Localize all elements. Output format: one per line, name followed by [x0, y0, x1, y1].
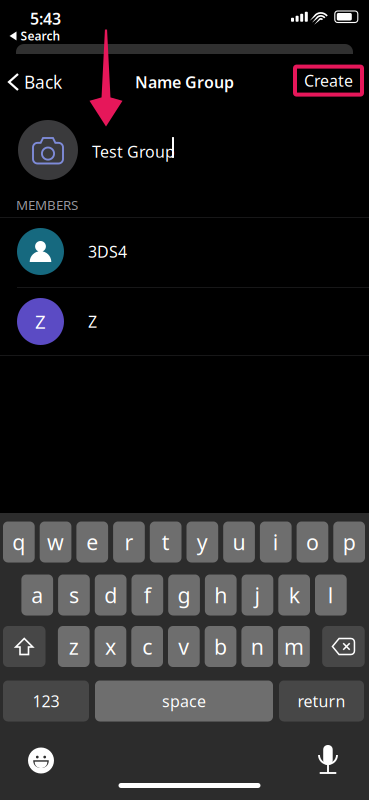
button[interactable]: h — [205, 574, 237, 615]
staticText: Search — [20, 28, 60, 44]
staticText: Create — [304, 70, 353, 91]
button[interactable]: m — [278, 626, 310, 667]
staticText: w — [47, 528, 64, 556]
button[interactable]: f — [131, 574, 163, 615]
button[interactable]: Dictation — [314, 745, 342, 774]
button[interactable]: z — [58, 626, 90, 667]
staticText: m — [284, 632, 304, 661]
staticText: MEMBERS — [16, 196, 78, 214]
staticText: Back — [24, 70, 62, 93]
staticText: t — [162, 528, 170, 556]
staticText: a — [31, 581, 43, 609]
staticText: z — [69, 632, 79, 661]
button[interactable]: p — [333, 521, 365, 562]
button[interactable]: Add group photo — [18, 120, 78, 180]
staticText: i — [273, 528, 279, 556]
staticText: Z — [88, 311, 97, 332]
staticText: x — [105, 632, 116, 661]
button[interactable]: u — [223, 521, 255, 562]
button[interactable]: 123 — [3, 680, 89, 721]
staticText: o — [306, 528, 319, 556]
staticText: e — [86, 528, 98, 556]
button[interactable]: x — [95, 626, 126, 667]
button[interactable]: b — [205, 626, 236, 667]
button[interactable]: c — [131, 626, 163, 667]
button[interactable]: t — [150, 521, 181, 562]
button[interactable]: n — [241, 626, 273, 667]
staticText: q — [12, 528, 25, 556]
staticText: f — [144, 581, 151, 609]
button[interactable]: Create — [295, 67, 362, 95]
button[interactable]: y — [186, 521, 218, 562]
button[interactable]: a — [21, 574, 53, 615]
button[interactable]: s — [58, 574, 90, 615]
staticText: y — [197, 528, 208, 556]
staticText: Z — [35, 309, 46, 334]
staticText: k — [289, 581, 300, 609]
staticText: 3DS4 — [88, 241, 127, 262]
staticText: b — [214, 632, 227, 661]
staticText: l — [328, 581, 334, 609]
staticText: h — [214, 581, 227, 609]
staticText: Test Group — [92, 141, 175, 162]
button[interactable]: w — [40, 521, 71, 562]
button[interactable]: Back — [0, 60, 62, 104]
button[interactable]: v — [168, 626, 200, 667]
button[interactable]: Delete — [322, 626, 365, 667]
staticText: return — [297, 690, 345, 712]
button[interactable]: j — [242, 574, 273, 615]
staticText: s — [69, 581, 79, 609]
staticText: c — [142, 632, 152, 661]
staticText: Name Group — [135, 71, 234, 93]
button[interactable]: d — [95, 574, 126, 615]
staticText: p — [343, 528, 356, 556]
staticText: 123 — [32, 690, 59, 712]
staticText: v — [178, 632, 189, 661]
button[interactable]: g — [168, 574, 200, 615]
button[interactable]: i — [260, 521, 292, 562]
staticText: u — [232, 528, 245, 556]
button[interactable]: q — [3, 521, 35, 562]
button[interactable]: e — [76, 521, 108, 562]
staticText: g — [178, 581, 191, 609]
staticText: j — [254, 581, 260, 609]
button[interactable]: 3DS4 — [0, 217, 369, 286]
button[interactable]: return — [279, 680, 364, 721]
staticText: space — [162, 690, 206, 712]
button[interactable]: space — [95, 680, 273, 721]
button[interactable]: k — [278, 574, 310, 615]
staticText: r — [124, 528, 133, 556]
button[interactable]: l — [315, 574, 347, 615]
button[interactable]: r — [113, 521, 145, 562]
button[interactable]: Z — [0, 287, 369, 356]
staticText: 5:43 — [30, 8, 61, 29]
button[interactable]: o — [297, 521, 328, 562]
button[interactable]: Emoji — [28, 747, 54, 773]
staticText: d — [104, 581, 117, 609]
button[interactable]: Shift — [3, 626, 45, 667]
staticText: n — [251, 632, 264, 661]
